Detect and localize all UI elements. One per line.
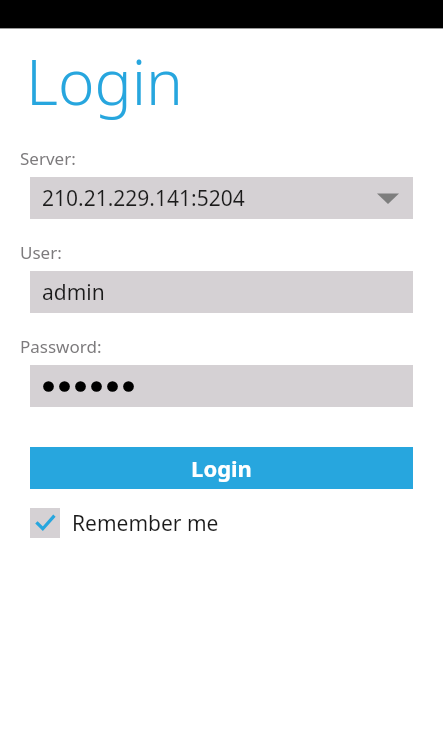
button[interactable]: 210.21.229.141:5204 [30,177,413,219]
staticText: admin [42,278,105,307]
staticText: User: [20,241,62,264]
button[interactable]: admin [30,271,413,313]
staticText: 210.21.229.141:5204 [42,184,245,213]
staticText: Login [26,39,183,123]
staticText: Login [191,453,252,483]
button[interactable] [30,365,413,407]
button[interactable]: Remember me [30,508,219,538]
staticText: Password: [20,335,102,358]
staticText: Remember me [72,509,219,538]
staticText: Server: [20,147,76,170]
button[interactable]: Login [30,447,413,489]
